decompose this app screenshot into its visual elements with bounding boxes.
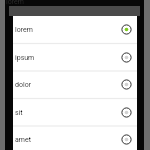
button[interactable]: sit xyxy=(13,99,137,127)
staticText: ipsum xyxy=(15,54,121,62)
staticText: sit xyxy=(15,109,121,117)
staticText: dolor xyxy=(15,81,121,89)
button[interactable]: ipsum xyxy=(13,44,137,72)
staticText: lorem xyxy=(6,0,24,6)
staticText: amet xyxy=(15,136,121,144)
button[interactable]: dolor xyxy=(13,71,137,99)
button[interactable]: amet xyxy=(13,126,137,150)
button[interactable]: lorem xyxy=(13,16,137,44)
staticText: lorem xyxy=(15,26,121,34)
